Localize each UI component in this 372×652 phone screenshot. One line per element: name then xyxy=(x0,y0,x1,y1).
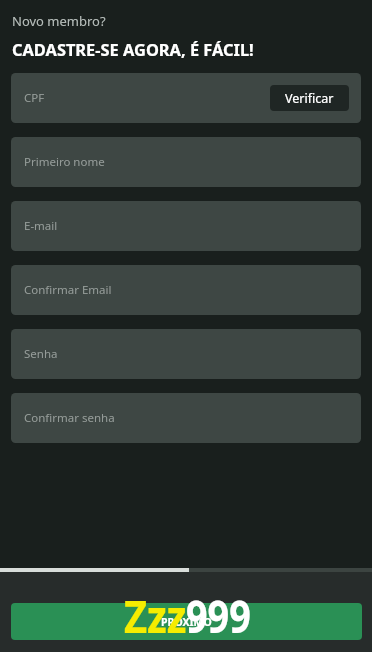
button[interactable]: Confirmar Email xyxy=(11,265,361,315)
staticText: Novo membro? xyxy=(12,12,106,30)
staticText: Verificar xyxy=(285,90,334,107)
staticText: Senha xyxy=(24,346,58,362)
button[interactable]: Primeiro nome xyxy=(11,137,361,187)
button[interactable]: Senha xyxy=(11,329,361,379)
staticText: Primeiro nome xyxy=(24,154,105,170)
staticText: Confirmar Email xyxy=(24,282,112,298)
staticText: E-mail xyxy=(24,218,58,234)
button[interactable]: PRÓXIMO xyxy=(11,603,362,640)
staticText: PRÓXIMO xyxy=(161,615,212,629)
staticText: CPF xyxy=(24,90,45,106)
staticText: Confirmar senha xyxy=(24,410,115,426)
button[interactable]: E-mail xyxy=(11,201,361,251)
staticText: CADASTRE-SE AGORA, É FÁCIL! xyxy=(12,38,254,60)
button[interactable]: CPF xyxy=(11,73,361,123)
button[interactable]: Confirmar senha xyxy=(11,393,361,443)
button[interactable]: Verificar xyxy=(270,85,349,111)
